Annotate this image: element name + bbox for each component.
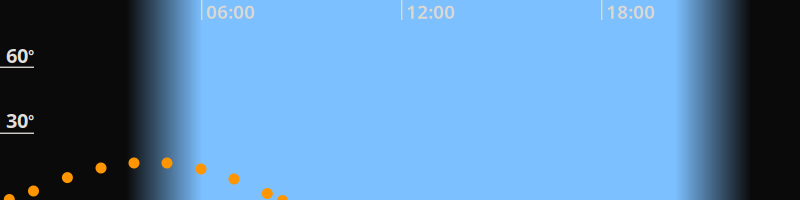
staticText: 12:00 [406, 0, 455, 24]
staticText: 18:00 [606, 0, 655, 24]
staticText: 60° [6, 42, 34, 69]
staticText: 06:00 [206, 0, 255, 24]
staticText: 30° [6, 107, 34, 134]
